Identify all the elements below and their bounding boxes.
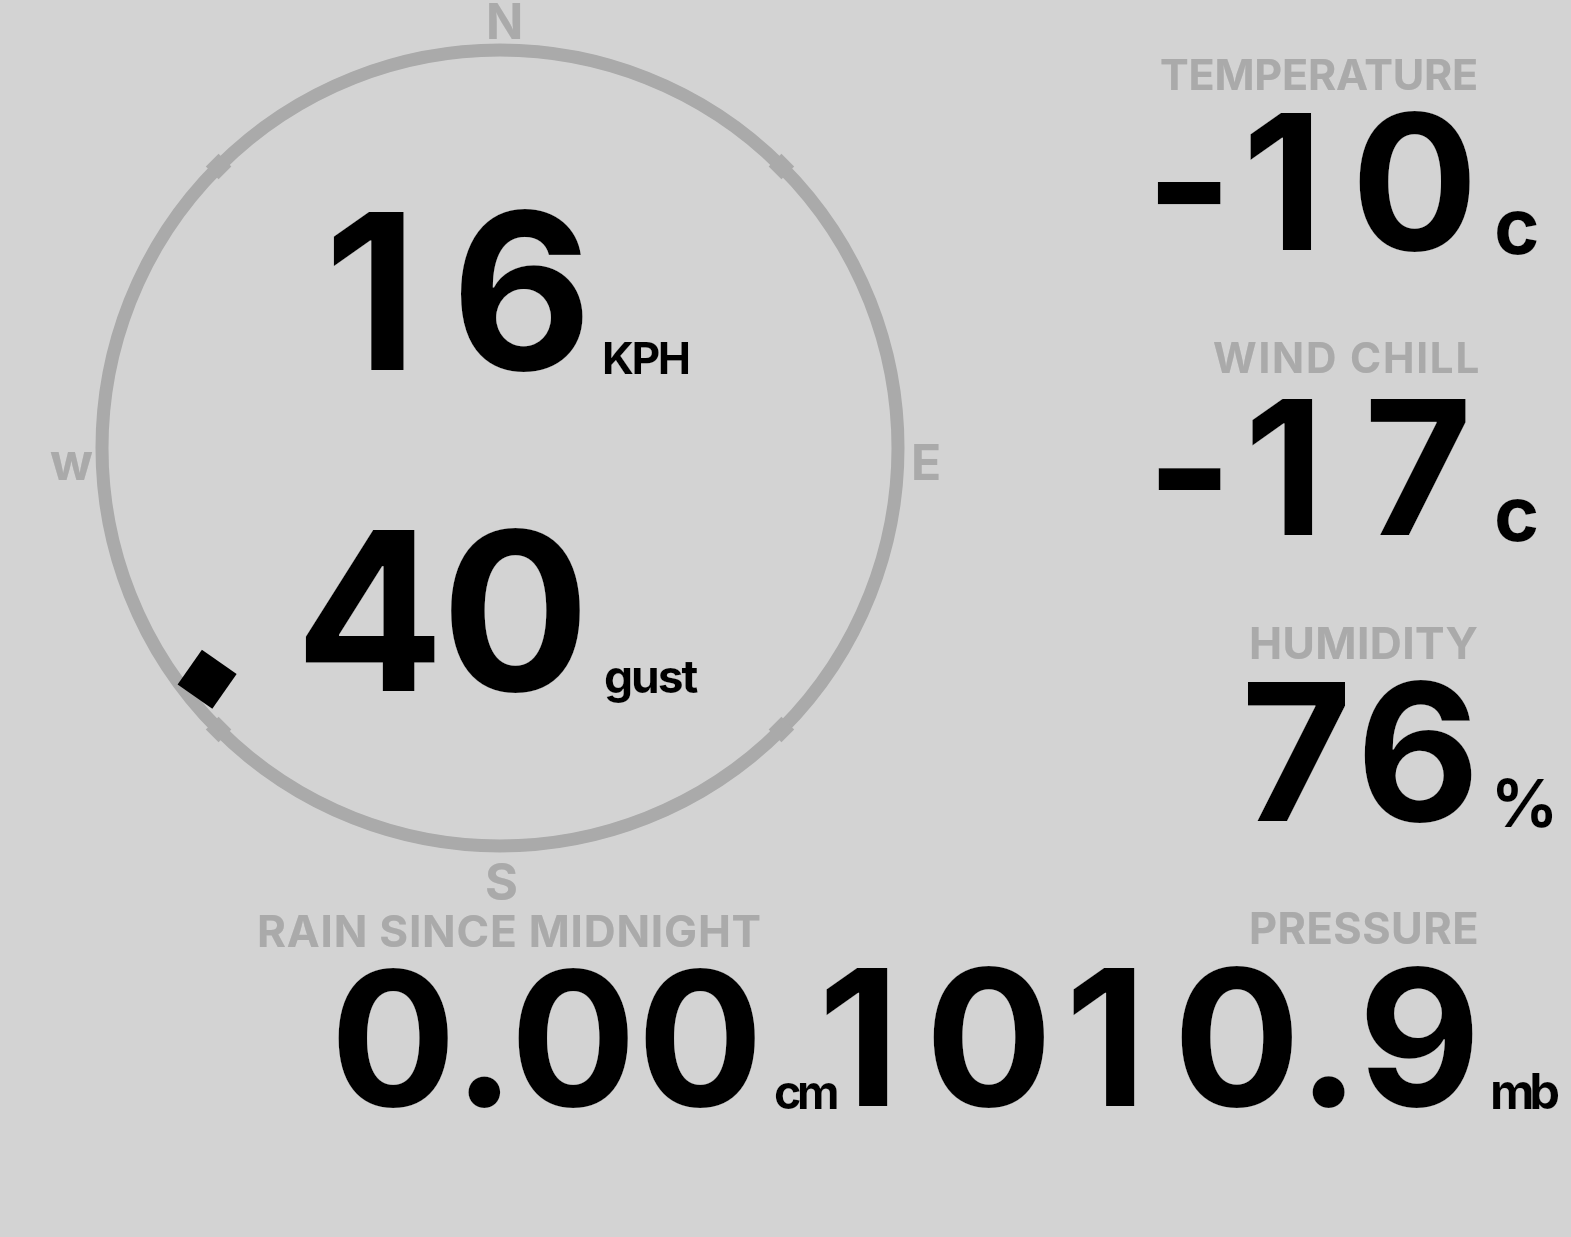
staticText: 0 xyxy=(1351,67,1479,295)
staticText: 1 xyxy=(1065,923,1147,1152)
staticText: 1 xyxy=(1242,67,1324,295)
staticText: 0 xyxy=(510,924,637,1151)
staticText: 0 xyxy=(637,924,764,1151)
staticText: KPH xyxy=(602,331,689,385)
staticText: PRESSURE xyxy=(1249,902,1480,954)
staticText: 7 xyxy=(1364,355,1473,580)
staticText: N xyxy=(486,0,524,51)
staticText: E xyxy=(911,432,942,492)
staticText: - xyxy=(1145,67,1234,295)
staticText: TEMPERATURE xyxy=(1160,48,1479,100)
staticText: c xyxy=(1494,179,1540,273)
staticText: % xyxy=(1491,763,1559,843)
staticText: - xyxy=(1146,355,1234,580)
staticText: w xyxy=(50,431,93,492)
staticText: 1 xyxy=(1244,355,1325,580)
staticText: WIND CHILL xyxy=(1213,332,1482,383)
staticText: 9 xyxy=(1358,923,1481,1152)
staticText: 4 xyxy=(295,477,445,744)
staticText: 1 xyxy=(324,159,418,422)
staticText: gust xyxy=(604,648,697,704)
staticText: RAIN SINCE MIDNIGHT xyxy=(257,904,762,957)
staticText: S xyxy=(485,851,518,912)
staticText: 6 xyxy=(451,159,593,422)
staticText: . xyxy=(1297,923,1361,1152)
staticText: 1 xyxy=(818,923,900,1152)
staticText: 0 xyxy=(1173,923,1301,1152)
staticText: . xyxy=(453,924,516,1151)
staticText: c xyxy=(1494,467,1540,560)
staticText: 6 xyxy=(1356,636,1480,867)
staticText: 0 xyxy=(441,477,590,744)
staticText: HUMIDITY xyxy=(1249,616,1479,670)
button[interactable]: Wind direction compass, wind from south … xyxy=(95,43,905,853)
staticText: 0 xyxy=(925,923,1053,1152)
staticText: 7 xyxy=(1241,636,1353,867)
staticText: cm xyxy=(774,1064,836,1121)
staticText: 0 xyxy=(330,924,457,1151)
staticText: mb xyxy=(1490,1062,1555,1121)
